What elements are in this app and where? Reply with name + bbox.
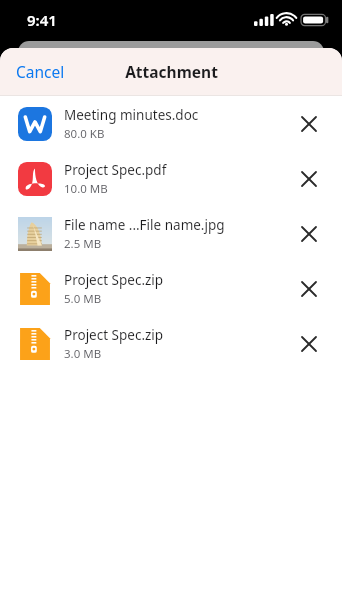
- button[interactable]: Cancel: [0, 52, 81, 91]
- button[interactable]: Meeting minutes.doc: [0, 96, 342, 151]
- button[interactable]: Remove Project Spec.zip: [289, 324, 329, 364]
- button[interactable]: Remove Project Spec.pdf: [289, 159, 329, 199]
- staticText: 9:41: [27, 10, 57, 30]
- button[interactable]: File name ...File name.jpg: [0, 206, 342, 261]
- staticText: Project Spec.pdf: [64, 161, 167, 179]
- staticText: Project Spec.zip: [64, 326, 164, 344]
- button[interactable]: Remove Project Spec.zip: [289, 269, 329, 309]
- staticText: 5.0 MB: [64, 291, 102, 307]
- staticText: Cancel: [16, 61, 65, 82]
- button[interactable]: Remove Meeting minutes.doc: [289, 104, 329, 144]
- staticText: Project Spec.zip: [64, 271, 164, 289]
- staticText: 2.5 MB: [64, 236, 102, 252]
- staticText: 3.0 MB: [64, 346, 102, 362]
- button[interactable]: Project Spec.pdf: [0, 151, 342, 206]
- staticText: Meeting minutes.doc: [64, 106, 199, 124]
- staticText: 10.0 MB: [64, 181, 108, 197]
- button[interactable]: Project Spec.zip: [0, 261, 342, 316]
- staticText: Attachment: [125, 61, 218, 82]
- staticText: File name ...File name.jpg: [64, 216, 225, 234]
- staticText: 80.0 KB: [64, 126, 105, 142]
- button[interactable]: Project Spec.zip: [0, 316, 342, 371]
- button[interactable]: Remove File name ...File name.jpg: [289, 214, 329, 254]
